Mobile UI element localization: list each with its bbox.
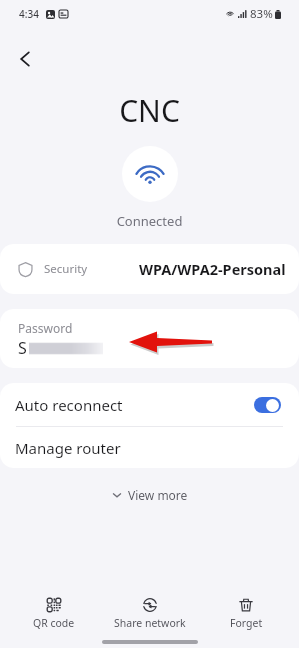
staticText: Auto reconnect — [15, 395, 123, 415]
button[interactable]: Share network — [102, 596, 198, 632]
button[interactable]: QR code — [5, 596, 102, 632]
staticText: QR code — [33, 616, 75, 630]
staticText: Forget — [230, 616, 263, 630]
staticText: Manage router — [15, 438, 121, 458]
staticText: 83% — [250, 6, 273, 22]
staticText: Password — [18, 320, 73, 336]
staticText: CNC — [0, 90, 299, 131]
button[interactable]: Manage router — [0, 427, 299, 468]
button[interactable]: Security — [0, 244, 299, 294]
button[interactable]: Forget — [198, 596, 294, 632]
button[interactable]: Auto reconnect — [0, 383, 299, 426]
staticText: 4:34 — [19, 7, 39, 21]
staticText: Connected — [0, 212, 299, 230]
staticText: S — [18, 337, 27, 359]
button[interactable]: View more — [102, 482, 198, 508]
button[interactable]: Back — [6, 40, 44, 78]
staticText: Security — [44, 261, 88, 277]
button[interactable]: Password — [0, 309, 299, 368]
staticText: WPA/WPA2-Personal — [139, 259, 286, 279]
staticText: Share network — [114, 616, 186, 630]
staticText: View more — [128, 487, 188, 503]
